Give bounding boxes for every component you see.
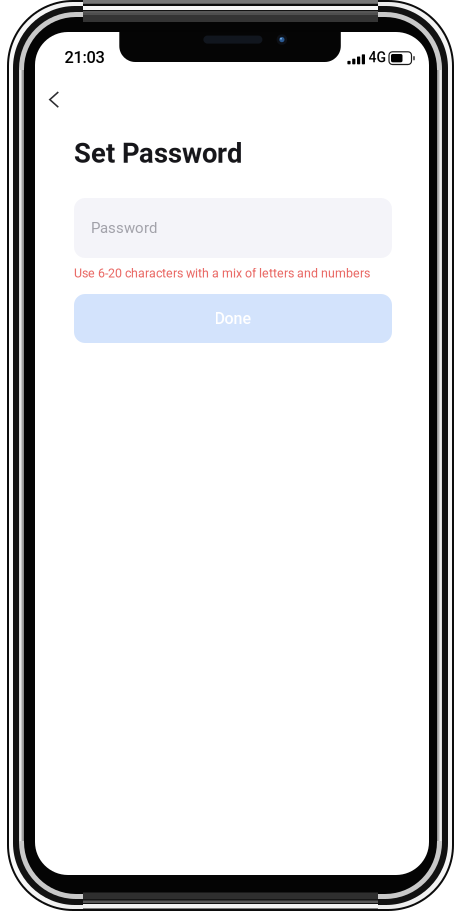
staticText: Set Password <box>74 137 242 169</box>
staticText: Password <box>91 219 157 237</box>
staticText: Done <box>214 309 251 328</box>
button[interactable]: Back <box>39 79 83 121</box>
staticText: Use 6-20 characters with a mix of letter… <box>74 266 370 280</box>
staticText: 21:03 <box>64 48 104 67</box>
button[interactable]: Done <box>74 294 392 343</box>
staticText: 4G <box>368 49 386 66</box>
